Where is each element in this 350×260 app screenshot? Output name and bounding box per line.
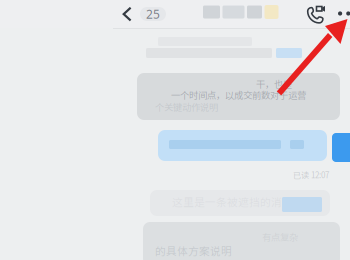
button[interactable]: Back, 25 unread (122, 0, 170, 28)
staticText: 有点复杂 (262, 230, 298, 243)
staticText: 个关键动作说明 (155, 100, 218, 113)
staticText: 这里是一条被遮挡的消息 (172, 194, 293, 209)
staticText: 25 (146, 6, 160, 22)
button[interactable]: More options (338, 5, 350, 22)
staticText: 已读 12:07 (293, 169, 329, 181)
staticText: 干，也是 (256, 77, 292, 90)
button[interactable]: Video call (304, 5, 324, 22)
staticText: 一个时间点，以成交前数对于运营 (171, 88, 306, 101)
staticText: 的具体方案说明 (155, 243, 232, 258)
